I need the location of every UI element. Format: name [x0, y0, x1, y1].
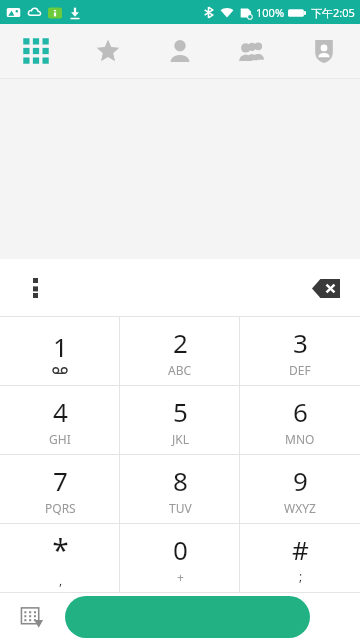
button[interactable]: Favorites — [72, 24, 144, 78]
button[interactable]: 1 — [0, 317, 120, 385]
staticText: 8 — [173, 463, 188, 498]
staticText: TUV — [169, 500, 192, 516]
button[interactable]: * — [0, 524, 120, 592]
staticText: 下午2:05 — [311, 5, 355, 20]
staticText: MNO — [285, 431, 315, 447]
staticText: 7 — [53, 463, 68, 498]
button[interactable]: 2 — [120, 317, 240, 385]
staticText: ; — [299, 568, 303, 584]
staticText: 3 — [293, 325, 308, 360]
staticText: 9 — [293, 463, 308, 498]
button[interactable]: # — [240, 524, 360, 592]
staticText: , — [59, 572, 63, 588]
staticText: WXYZ — [284, 500, 316, 516]
button[interactable]: 5 — [120, 386, 240, 454]
staticText: GHI — [49, 431, 71, 447]
staticText: * — [52, 529, 69, 570]
staticText: 4 — [53, 394, 68, 429]
button[interactable]: 8 — [120, 455, 240, 523]
button[interactable]: 0 — [120, 524, 240, 592]
staticText: PQRS — [45, 500, 76, 516]
staticText: ABC — [168, 362, 192, 378]
button[interactable]: Call — [65, 596, 310, 638]
staticText: 2 — [173, 325, 188, 360]
button[interactable]: Blocked — [288, 24, 360, 78]
button[interactable]: More options — [18, 271, 52, 305]
staticText: 100% — [256, 5, 285, 20]
staticText: 0 — [173, 532, 188, 567]
button[interactable]: Dialpad — [0, 24, 72, 78]
button[interactable]: Backspace — [306, 271, 346, 305]
staticText: DEF — [289, 362, 311, 378]
button[interactable]: Contacts — [144, 24, 216, 78]
staticText: # — [292, 532, 309, 567]
staticText: JKL — [172, 431, 189, 447]
button[interactable]: 9 — [240, 455, 360, 523]
staticText: 6 — [293, 394, 308, 429]
staticText: 1 — [53, 329, 68, 364]
button[interactable]: 3 — [240, 317, 360, 385]
button[interactable]: 7 — [0, 455, 120, 523]
button[interactable]: 6 — [240, 386, 360, 454]
button[interactable]: 4 — [0, 386, 120, 454]
button[interactable]: Groups — [216, 24, 288, 78]
button[interactable]: Hide dialpad — [12, 597, 52, 637]
staticText: + — [177, 569, 184, 585]
staticText: 5 — [173, 394, 188, 429]
